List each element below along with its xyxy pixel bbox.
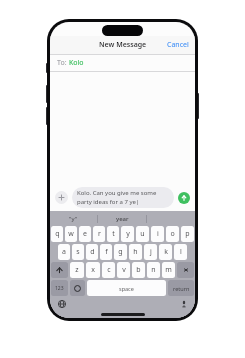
staticText: j (150, 247, 152, 257)
staticText: y (126, 229, 130, 239)
staticText: z (75, 265, 79, 275)
button[interactable]: Kolo. Can you give me some (72, 187, 174, 208)
staticText: Cancel (167, 40, 189, 50)
button[interactable]: l (174, 244, 187, 260)
button[interactable]: t (107, 226, 119, 242)
button[interactable]: y (121, 226, 134, 242)
button[interactable]: e (79, 226, 91, 242)
button[interactable]: i (151, 226, 164, 242)
button[interactable]: d (86, 244, 98, 260)
button[interactable]: a (58, 244, 70, 260)
button[interactable]: g (114, 244, 127, 260)
staticText: q (55, 229, 60, 239)
staticText: h (133, 247, 138, 257)
staticText: u (140, 229, 145, 239)
staticText: e (83, 229, 87, 239)
staticText: n (151, 265, 156, 275)
button[interactable]: year (98, 211, 146, 226)
staticText: m (165, 265, 172, 275)
staticText: Kolo (69, 58, 84, 68)
button[interactable]: f (100, 244, 112, 260)
staticText: g (118, 247, 123, 257)
staticText: s (76, 247, 80, 257)
staticText: New Message (99, 40, 147, 50)
button[interactable]: Add attachment (55, 191, 68, 204)
staticText: d (90, 247, 95, 257)
staticText: x (91, 265, 95, 275)
button[interactable]: o (166, 226, 179, 242)
button[interactable]: To: (50, 55, 195, 71)
staticText: year (116, 215, 129, 223)
button[interactable]: Backspace (177, 262, 194, 278)
button[interactable]: c (102, 262, 115, 278)
staticText: c (107, 265, 111, 275)
button[interactable]: Send (178, 192, 190, 204)
button[interactable]: x (86, 262, 100, 278)
staticText: w (68, 229, 74, 239)
staticText: a (62, 247, 66, 257)
staticText: space (119, 285, 134, 292)
button[interactable]: w (65, 226, 77, 242)
staticText: o (170, 229, 175, 239)
staticText: l (180, 247, 182, 257)
staticText: party ideas for a 7 ye| (77, 198, 140, 206)
staticText: v (122, 265, 126, 275)
button[interactable]: Cancel (161, 37, 195, 53)
button[interactable]: "y" (50, 211, 97, 226)
staticText: i (157, 229, 159, 239)
button[interactable]: n (147, 262, 160, 278)
button[interactable]: b (132, 262, 145, 278)
button[interactable]: 123 (51, 280, 68, 296)
button[interactable]: u (136, 226, 149, 242)
button[interactable]: p (181, 226, 194, 242)
staticText: r (98, 229, 101, 239)
staticText: To: (57, 58, 69, 68)
staticText: f (105, 247, 108, 257)
staticText: t (112, 229, 115, 239)
button[interactable]: v (117, 262, 130, 278)
button[interactable]: h (129, 244, 142, 260)
staticText: k (164, 247, 168, 257)
staticText: b (136, 265, 141, 275)
button[interactable]: j (144, 244, 157, 260)
button[interactable]: Shift (51, 262, 68, 278)
button[interactable]: z (70, 262, 84, 278)
button[interactable]: Change keyboard (56, 298, 67, 309)
staticText: "y" (69, 215, 78, 223)
button[interactable]: space (87, 280, 166, 296)
staticText: 123 (55, 285, 64, 292)
button[interactable]: Emoji (70, 280, 85, 296)
staticText: return (173, 285, 190, 292)
staticText: p (185, 229, 190, 239)
button[interactable]: r (93, 226, 105, 242)
button[interactable]: k (159, 244, 172, 260)
button[interactable]: Dictate (178, 298, 189, 309)
button[interactable]: q (51, 226, 63, 242)
button[interactable]: return (168, 280, 194, 296)
button[interactable]: m (162, 262, 175, 278)
staticText: Kolo. Can you give me some (77, 189, 157, 197)
button[interactable]: s (72, 244, 84, 260)
